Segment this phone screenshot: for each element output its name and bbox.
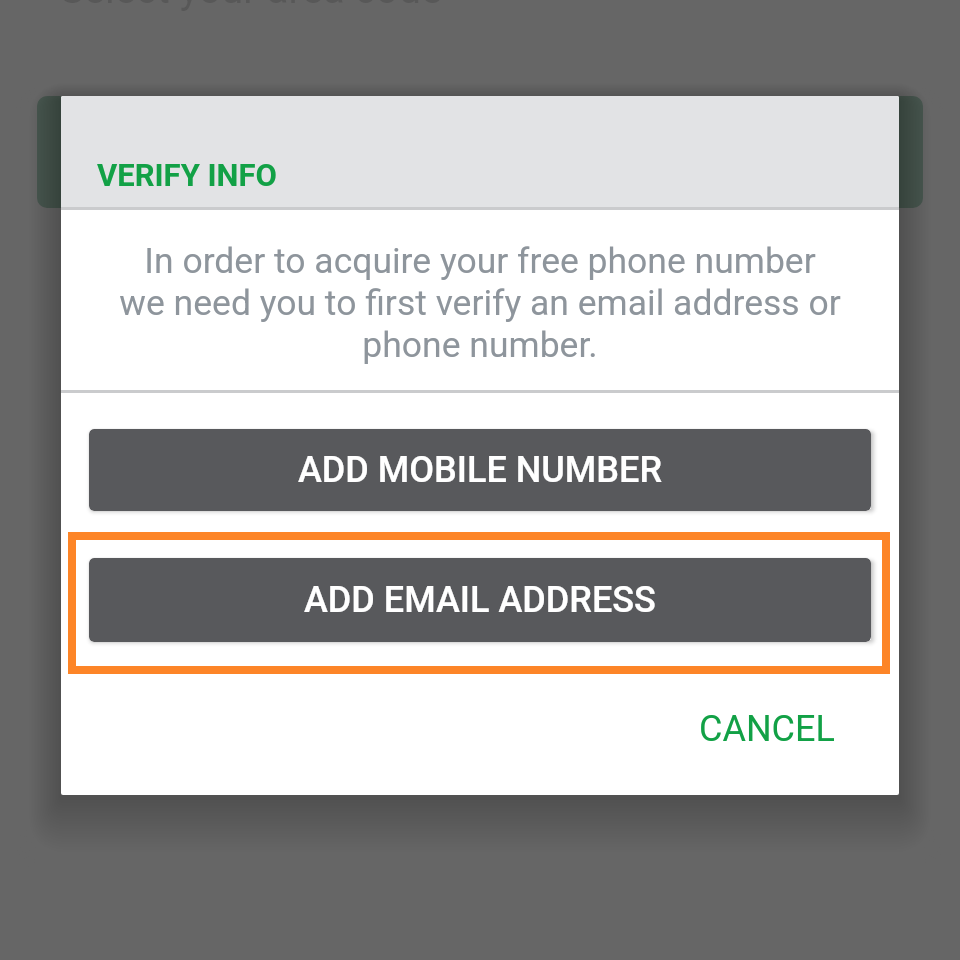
staticText: VERIFY INFO: [97, 157, 277, 193]
button[interactable]: ADD MOBILE NUMBER: [89, 429, 871, 511]
staticText: Select your area code: [60, 0, 443, 13]
staticText: In order to acquire your free phone numb…: [61, 240, 899, 366]
staticText: ADD EMAIL ADDRESS: [304, 579, 656, 621]
button[interactable]: CANCEL: [679, 694, 855, 764]
staticText: CANCEL: [699, 708, 835, 750]
staticText: ADD MOBILE NUMBER: [298, 449, 663, 491]
button[interactable]: ADD EMAIL ADDRESS: [89, 558, 871, 642]
